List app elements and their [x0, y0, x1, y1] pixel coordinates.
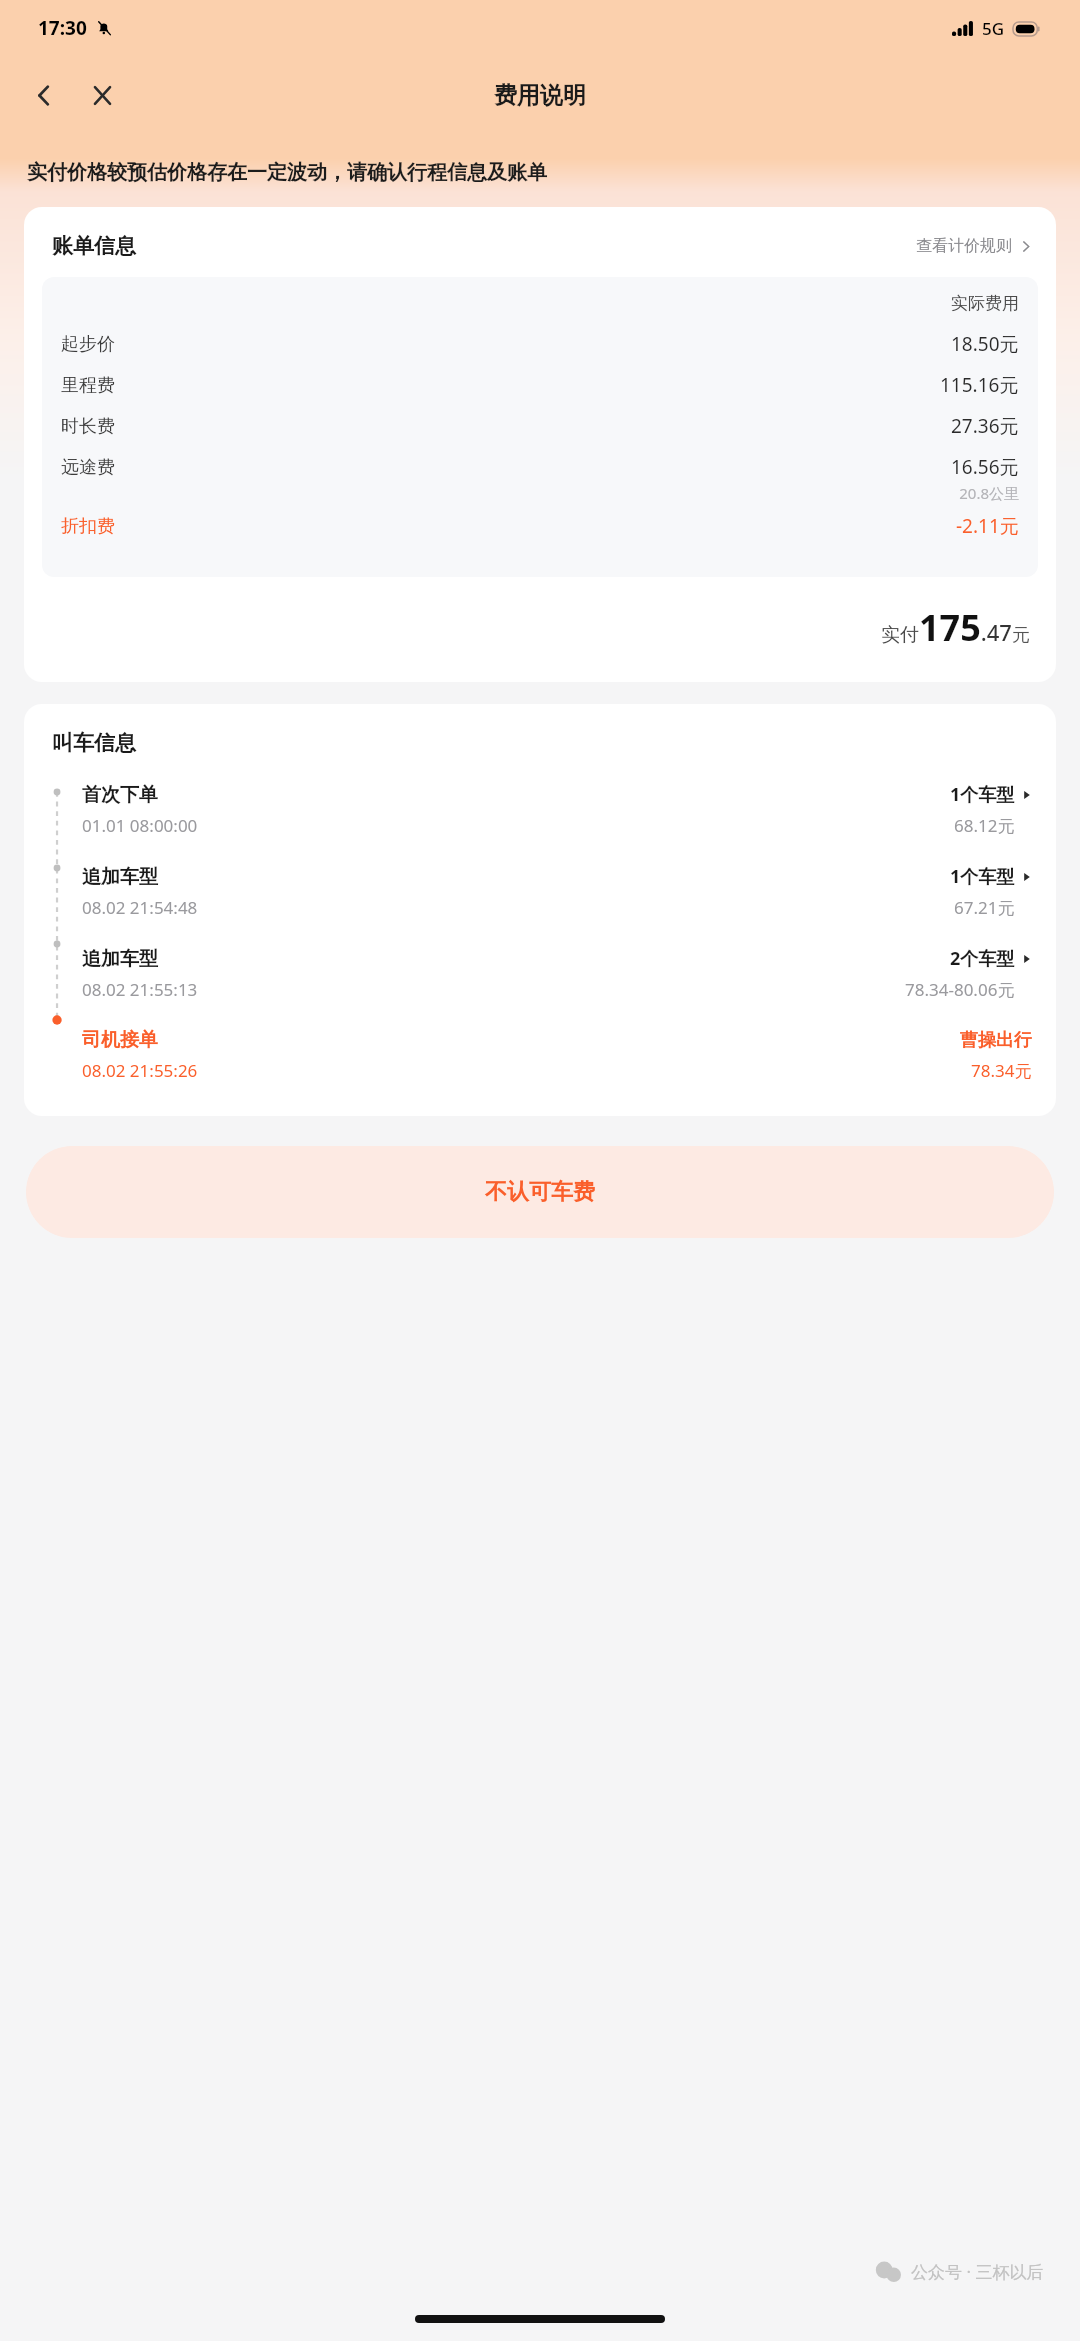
staticText: 追加车型 — [82, 947, 158, 971]
staticText: 实际费用 — [61, 293, 1019, 314]
button[interactable]: 追加车型 — [82, 946, 1032, 1001]
button[interactable]: 不认可车费 — [26, 1146, 1054, 1238]
staticText: 查看计价规则 — [916, 236, 1012, 256]
button[interactable]: Back — [18, 69, 70, 121]
staticText: 账单信息 — [52, 233, 136, 259]
staticText: 实付175.47元 — [881, 603, 1030, 652]
staticText: 68.12元 — [954, 814, 1015, 837]
staticText: 折扣费 — [61, 515, 115, 538]
staticText: 20.8公里 — [61, 483, 1019, 503]
staticText: -2.11元 — [956, 513, 1019, 539]
staticText: 08.02 21:54:48 — [82, 896, 198, 919]
staticText: 27.36元 — [951, 413, 1019, 439]
staticText: 实付价格较预估价格存在一定波动，请确认行程信息及账单 — [27, 160, 1053, 185]
button[interactable]: 追加车型 — [82, 864, 1032, 919]
staticText: 115.16元 — [940, 372, 1019, 398]
staticText: 远途费 — [61, 456, 115, 479]
staticText: 01.01 08:00:00 — [82, 814, 198, 837]
staticText: 不认可车费 — [485, 1178, 595, 1206]
staticText: 起步价 — [61, 333, 115, 356]
staticText: 首次下单 — [82, 783, 158, 807]
staticText: 08.02 21:55:26 — [82, 1059, 198, 1082]
staticText: 78.34-80.06元 — [905, 978, 1015, 1001]
staticText: 78.34元 — [971, 1059, 1032, 1082]
staticText: 5G — [982, 17, 1005, 40]
staticText: 1个车型 — [950, 864, 1015, 889]
button[interactable]: 首次下单 — [82, 782, 1032, 837]
staticText: 2个车型 — [950, 946, 1015, 971]
staticText: 公众号 · 三杯以后 — [911, 2260, 1044, 2283]
staticText: 里程费 — [61, 374, 115, 397]
button[interactable]: 司机接单 — [82, 1028, 1032, 1082]
staticText: 追加车型 — [82, 865, 158, 889]
staticText: 1个车型 — [950, 782, 1015, 807]
staticText: 司机接单 — [82, 1028, 158, 1052]
staticText: 67.21元 — [954, 896, 1015, 919]
button[interactable]: Close — [76, 69, 128, 121]
staticText: 17:30 — [38, 15, 87, 41]
staticText: 曹操出行 — [960, 1029, 1032, 1052]
staticText: 18.50元 — [951, 331, 1019, 357]
staticText: 费用说明 — [494, 81, 586, 110]
staticText: 08.02 21:55:13 — [82, 978, 198, 1001]
staticText: 叫车信息 — [52, 730, 136, 756]
staticText: 16.56元 — [951, 454, 1019, 480]
button[interactable]: 账单信息 — [24, 207, 1056, 277]
staticText: 时长费 — [61, 415, 115, 438]
